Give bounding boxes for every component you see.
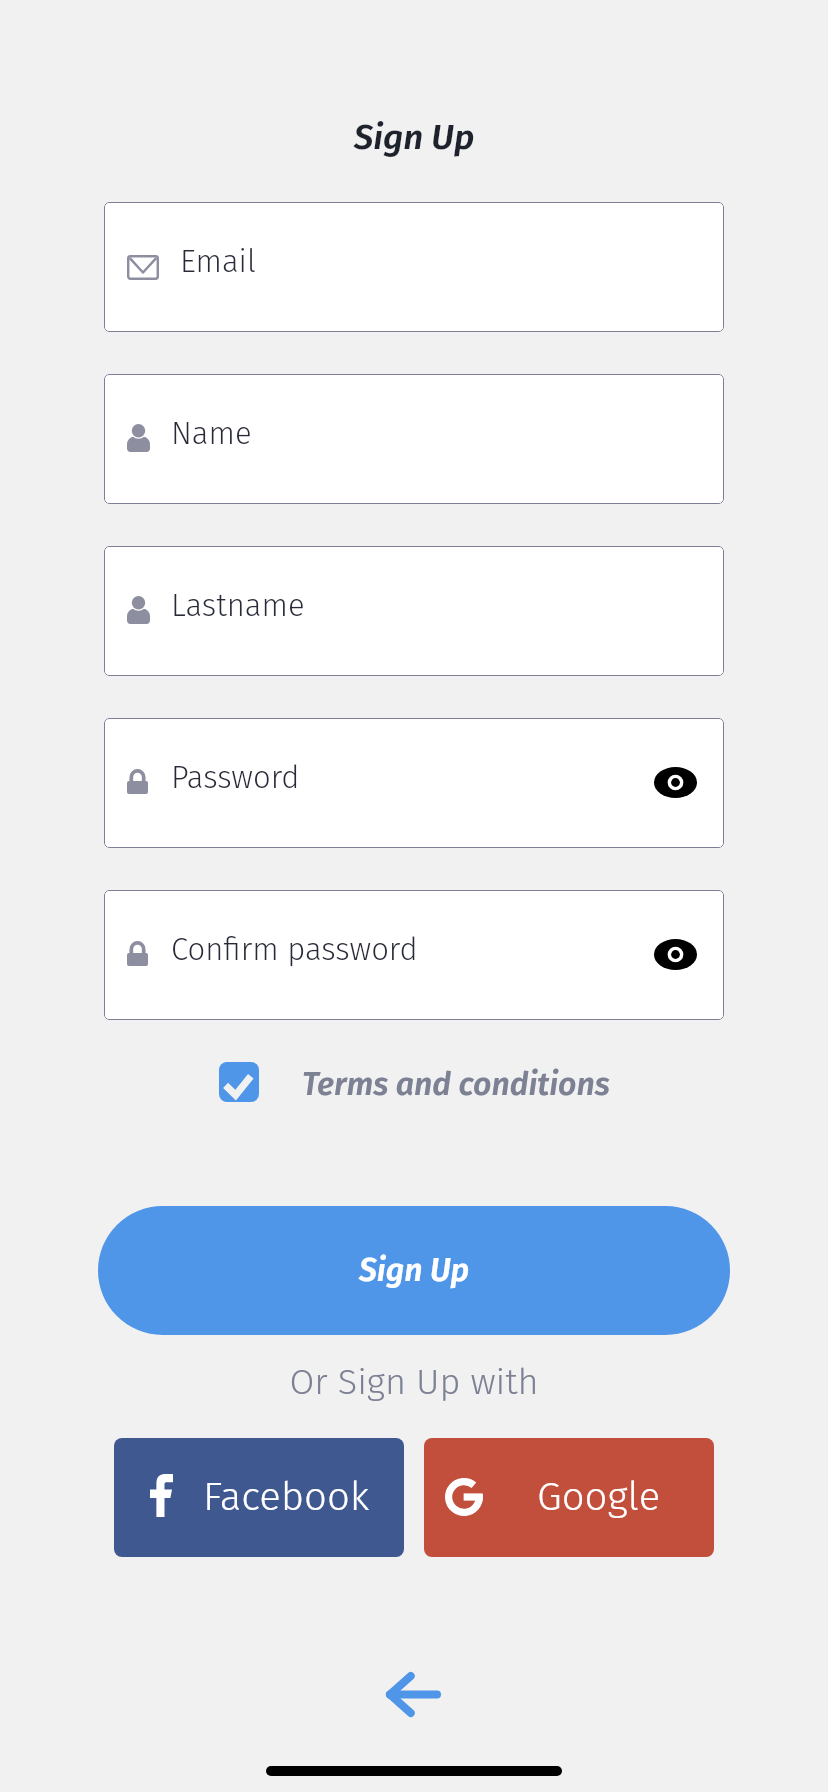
button[interactable]: Back [371, 1652, 455, 1736]
button[interactable]: Name [104, 374, 724, 504]
staticText: Sign Up [359, 1251, 470, 1289]
button[interactable]: Accept terms and conditions [219, 1062, 259, 1102]
staticText: Password [171, 759, 300, 796]
button[interactable]: Sign Up [98, 1206, 730, 1335]
button[interactable]: Facebook [114, 1438, 404, 1557]
staticText: Google [537, 1473, 661, 1521]
button[interactable]: Google [424, 1438, 714, 1557]
staticText: Lastname [171, 587, 305, 624]
staticText: Facebook [203, 1473, 370, 1521]
button[interactable]: Show password [645, 925, 705, 985]
staticText: Email [180, 243, 256, 280]
button[interactable]: Confirm password [104, 890, 724, 1020]
button[interactable]: Show password [645, 753, 705, 813]
staticText: Or Sign Up with [0, 1360, 828, 1403]
staticText: Name [171, 415, 252, 452]
button[interactable]: Lastname [104, 546, 724, 676]
button[interactable]: Password [104, 718, 724, 848]
button[interactable]: Terms and conditions [302, 1062, 610, 1100]
staticText: Confirm password [171, 931, 418, 968]
staticText: Sign Up [0, 116, 828, 158]
button[interactable]: Email [104, 202, 724, 332]
